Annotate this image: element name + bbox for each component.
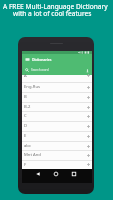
staticText: A — [24, 73, 27, 79]
staticText: Eng-Rus — [24, 84, 41, 90]
staticText: B — [24, 94, 27, 100]
other: Open navigation menu — [25, 57, 30, 62]
button[interactable]: abc — [22, 141, 92, 151]
staticText: D — [24, 123, 28, 129]
staticText: C — [24, 113, 27, 119]
button[interactable]: Mnt And — [22, 150, 92, 160]
button[interactable]: Home — [52, 170, 60, 178]
staticText: E — [24, 133, 27, 139]
staticText: abc — [24, 143, 31, 149]
staticText: A FREE Multi-Language Dictionary — [3, 2, 108, 11]
button[interactable]: D — [22, 121, 92, 131]
button[interactable]: Recent apps — [70, 170, 78, 178]
button[interactable]: Search word — [22, 65, 92, 75]
staticText: Mnt And — [24, 152, 41, 158]
button[interactable]: B — [22, 92, 92, 102]
button[interactable]: Back — [34, 170, 42, 178]
staticText: F — [24, 162, 27, 168]
button[interactable]: E — [22, 131, 92, 141]
staticText: Search word — [31, 68, 49, 72]
other: Voice search — [85, 68, 90, 73]
button[interactable]: F — [22, 160, 92, 169]
staticText: B-2 — [24, 104, 31, 110]
button[interactable]: Open navigation menu — [22, 54, 92, 65]
button[interactable]: B-2 — [22, 102, 92, 112]
staticText: Dictionaries — [32, 57, 52, 62]
staticText: with a lot of cool features — [13, 9, 92, 18]
button[interactable]: A — [22, 75, 92, 82]
button[interactable]: C — [22, 111, 92, 121]
button[interactable]: Eng-Rus — [22, 82, 92, 92]
